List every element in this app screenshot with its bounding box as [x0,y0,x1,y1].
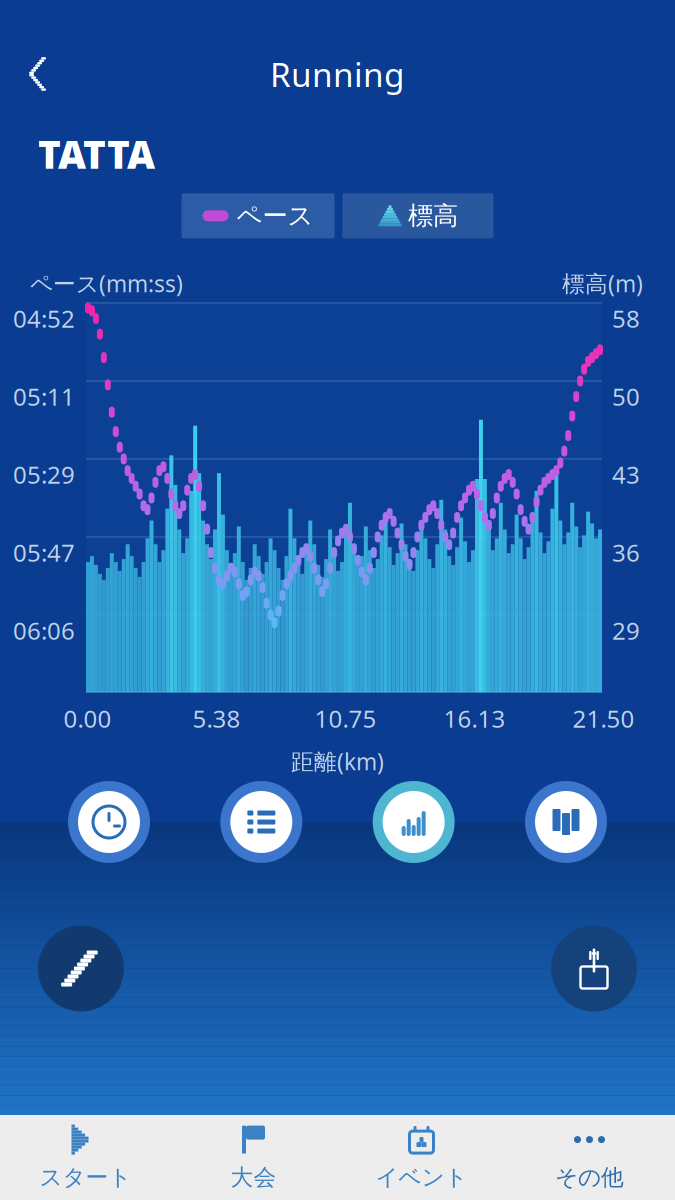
staticText: 距離(km) [291,746,384,776]
button[interactable]: Map [525,781,607,863]
staticText: 05:11 [13,380,75,412]
staticText: 05:47 [13,536,75,568]
button[interactable]: その他 [505,1115,673,1200]
staticText: 標高(m) [562,268,643,298]
staticText: 04:52 [13,302,75,334]
staticText: 21.50 [572,702,634,734]
staticText: 58 [612,302,640,334]
staticText: 大会 [230,1164,276,1191]
button[interactable]: Share [551,925,637,1011]
staticText: 50 [612,380,640,412]
button[interactable]: Back [14,49,64,99]
staticText: スタート [39,1164,131,1191]
staticText: TATTA [38,128,155,179]
staticText: 36 [612,536,640,568]
staticText: Running [270,52,405,96]
button[interactable]: Charts [373,781,455,863]
staticText: 0.00 [63,702,111,734]
button[interactable]: 標高 [342,193,493,238]
staticText: 10.75 [314,702,376,734]
staticText: 06:06 [13,614,75,646]
button[interactable]: ペース [181,193,334,238]
staticText: ペース [236,200,313,231]
button[interactable]: スタート [1,1115,169,1200]
staticText: イベント [375,1164,467,1191]
staticText: 29 [612,614,640,646]
button[interactable]: Edit [38,925,124,1011]
button[interactable]: 大会 [169,1115,337,1200]
staticText: 16.13 [443,702,505,734]
staticText: 43 [612,458,640,490]
staticText: 5.38 [192,702,240,734]
staticText: 05:29 [13,458,75,490]
staticText: ペース(mm:ss) [30,268,183,298]
button[interactable]: Time [68,781,150,863]
staticText: 標高 [408,200,458,231]
button[interactable]: イベント [337,1115,505,1200]
button[interactable]: Splits [220,781,302,863]
staticText: その他 [555,1164,624,1191]
